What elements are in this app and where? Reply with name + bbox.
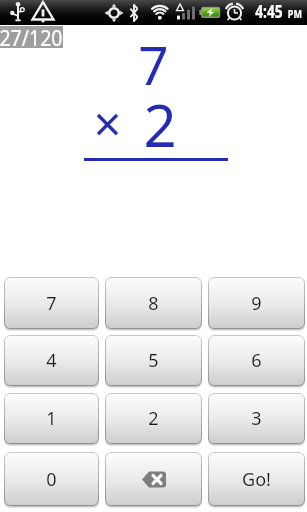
staticText: 4 bbox=[46, 348, 57, 373]
staticText: 3 bbox=[251, 406, 262, 431]
staticText: 2 bbox=[148, 406, 159, 431]
staticText: × bbox=[93, 90, 122, 157]
button[interactable]: 7 bbox=[4, 277, 99, 329]
button[interactable]: 4 bbox=[4, 335, 99, 386]
staticText: Go! bbox=[242, 467, 271, 492]
button[interactable]: 2 bbox=[105, 393, 202, 444]
staticText: 7 bbox=[46, 291, 57, 316]
button[interactable]: 5 bbox=[105, 335, 202, 386]
button[interactable]: 3 bbox=[208, 393, 305, 444]
staticText: 4:45 bbox=[255, 0, 283, 23]
button[interactable] bbox=[105, 452, 202, 506]
button[interactable]: 8 bbox=[105, 277, 202, 329]
button[interactable]: 6 bbox=[208, 335, 305, 386]
button[interactable]: 9 bbox=[208, 277, 305, 329]
staticText: 9 bbox=[251, 291, 262, 316]
staticText: 8 bbox=[148, 291, 159, 316]
staticText: 1 bbox=[46, 406, 57, 431]
staticText: PM bbox=[288, 7, 302, 21]
staticText: 27/120 bbox=[0, 24, 63, 48]
button[interactable]: Go! bbox=[208, 452, 305, 506]
button[interactable]: 1 bbox=[4, 393, 99, 444]
staticText: 5 bbox=[148, 348, 159, 373]
staticText: 0 bbox=[46, 467, 57, 492]
button[interactable]: 0 bbox=[4, 452, 99, 506]
staticText: 2 bbox=[143, 85, 177, 164]
staticText: 6 bbox=[251, 348, 262, 373]
staticText: 7 bbox=[138, 28, 169, 100]
